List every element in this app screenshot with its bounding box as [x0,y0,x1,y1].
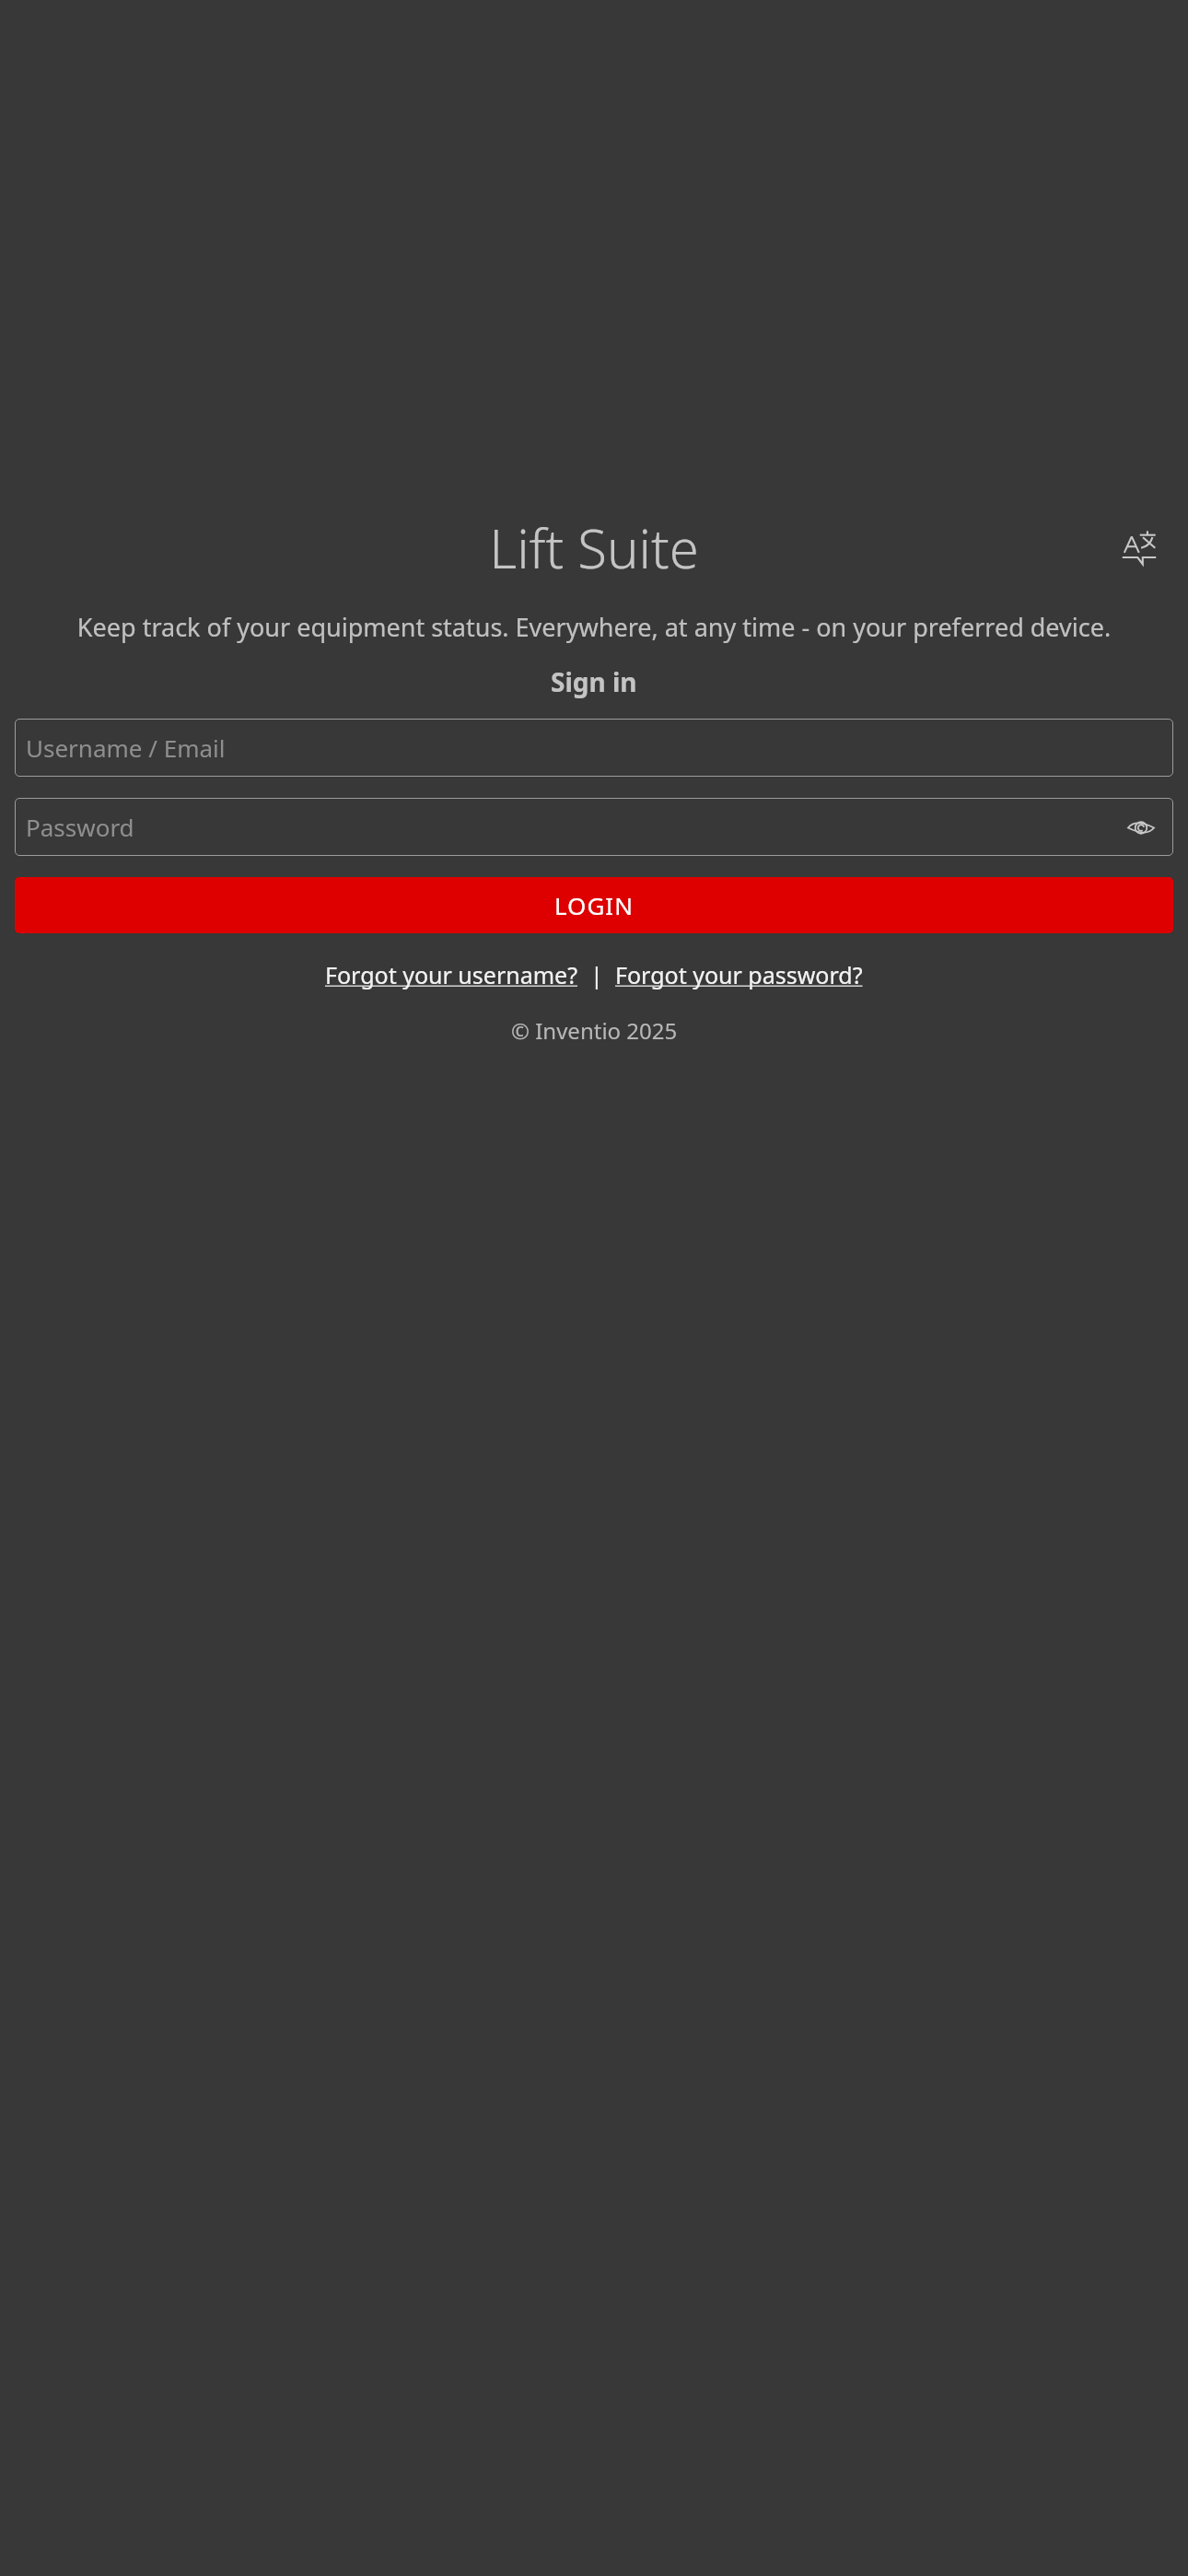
button[interactable]: Forgot your username? [325,959,578,990]
staticText: Forgot your username? [325,959,578,990]
button[interactable]: Password [15,798,1173,856]
staticText: Forgot your password? [615,959,863,990]
button[interactable]: Username / Email [15,719,1173,777]
staticText: Sign in [551,664,637,699]
button[interactable]: Forgot your password? [615,959,863,990]
staticText: © Inventio 2025 [511,1015,678,1046]
staticText: Username / Email [26,732,226,764]
button[interactable]: Show password [1120,806,1162,849]
staticText: Password [26,811,134,843]
button[interactable]: Change language [1114,522,1164,572]
staticText: LOGIN [554,889,634,921]
staticText: | [578,959,615,990]
staticText: Keep track of your equipment status. Eve… [15,610,1173,644]
button[interactable]: LOGIN [15,877,1173,933]
staticText: Lift Suite [489,511,699,584]
